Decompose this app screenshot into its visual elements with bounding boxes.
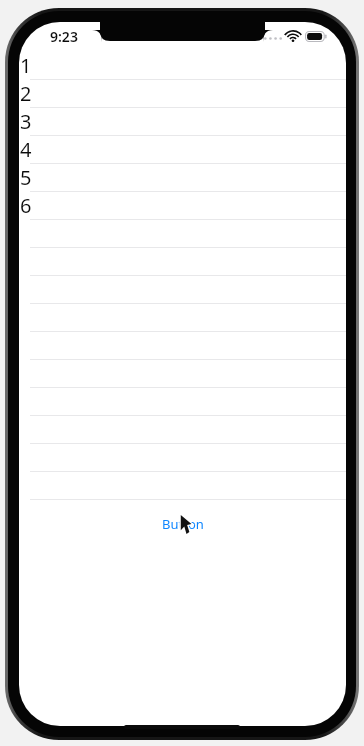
button[interactable]: Button <box>154 510 212 538</box>
staticText: 1 <box>20 52 32 79</box>
button[interactable]: 2 <box>19 80 346 108</box>
staticText: 6 <box>20 192 32 219</box>
button[interactable]: 3 <box>19 108 346 136</box>
button[interactable]: 4 <box>19 136 346 164</box>
staticText: Button <box>162 515 204 533</box>
staticText: 9:23 <box>50 27 78 46</box>
button[interactable] <box>19 276 346 304</box>
button[interactable] <box>19 360 346 388</box>
other: Pointer <box>180 515 193 534</box>
button[interactable]: 1 <box>19 52 346 80</box>
staticText: 3 <box>20 108 32 135</box>
staticText: 2 <box>20 80 32 107</box>
button[interactable] <box>19 248 346 276</box>
staticText: 4 <box>20 136 32 163</box>
button[interactable] <box>19 304 346 332</box>
button[interactable] <box>19 444 346 472</box>
button[interactable]: 5 <box>19 164 346 192</box>
button[interactable] <box>19 416 346 444</box>
button[interactable] <box>19 472 346 500</box>
button[interactable] <box>19 332 346 360</box>
button[interactable]: 6 <box>19 192 346 220</box>
button[interactable] <box>19 388 346 416</box>
staticText: 5 <box>20 164 32 191</box>
button[interactable] <box>19 220 346 248</box>
